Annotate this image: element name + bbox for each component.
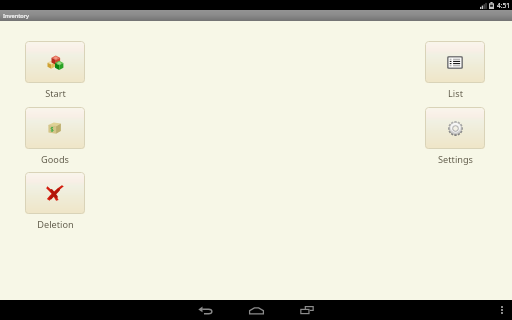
button[interactable]: Start	[25, 41, 85, 100]
staticText: Settings	[438, 153, 473, 166]
button[interactable]: List	[425, 41, 485, 100]
staticText: 4:51	[497, 1, 510, 10]
staticText: Goods	[41, 153, 69, 166]
button[interactable]: Goods	[25, 107, 85, 166]
button[interactable]: Back	[181, 300, 229, 320]
staticText: List	[448, 87, 463, 100]
button[interactable]: More options	[491, 300, 512, 320]
staticText: Deletion	[37, 218, 74, 231]
button[interactable]: Settings	[425, 107, 485, 166]
button[interactable]: Home	[232, 300, 280, 320]
staticText: Start	[45, 87, 66, 100]
staticText: Inventory	[3, 12, 30, 20]
button[interactable]: Recent apps	[283, 300, 331, 320]
button[interactable]: Deletion	[25, 172, 85, 231]
